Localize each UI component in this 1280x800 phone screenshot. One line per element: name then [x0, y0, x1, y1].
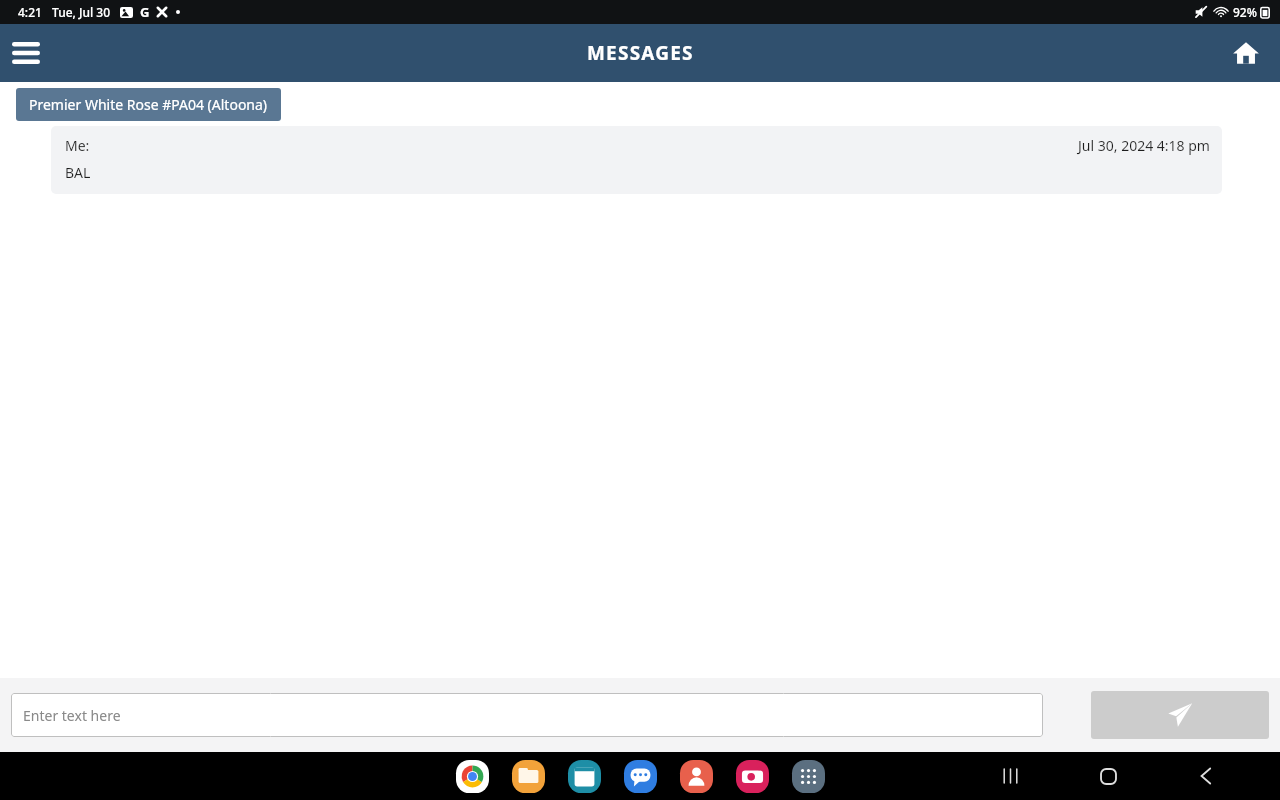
button[interactable]: Home [1084, 752, 1132, 800]
button[interactable]: Contacts [676, 756, 716, 796]
button[interactable]: Chrome [452, 756, 492, 796]
staticText: Premier White Rose #PA04 (Altoona) [29, 95, 268, 114]
staticText: Tue, Jul 30 [52, 4, 111, 20]
button[interactable]: Home [1222, 29, 1270, 77]
staticText: MESSAGES [587, 40, 694, 66]
button[interactable]: Recent apps [986, 752, 1034, 800]
button[interactable]: Open navigation menu [4, 31, 48, 75]
button[interactable]: Calendar [564, 756, 604, 796]
button[interactable]: Enter text here [11, 693, 1043, 737]
staticText: Enter text here [23, 706, 121, 725]
button[interactable]: Send [1091, 691, 1269, 739]
staticText: 92% [1233, 4, 1257, 20]
staticText: 4:21 [18, 4, 42, 20]
button[interactable]: Apps [788, 756, 828, 796]
button[interactable]: Me: [51, 126, 1222, 194]
button[interactable]: Files [508, 756, 548, 796]
button[interactable]: Camera [732, 756, 772, 796]
staticText: G [140, 3, 150, 21]
staticText: BAL [65, 163, 91, 182]
button[interactable]: Premier White Rose #PA04 (Altoona) [16, 88, 281, 121]
button[interactable]: Back [1182, 752, 1230, 800]
button[interactable]: Messages [620, 756, 660, 796]
staticText: Me: [65, 136, 90, 155]
staticText: Jul 30, 2024 4:18 pm [1078, 136, 1210, 155]
